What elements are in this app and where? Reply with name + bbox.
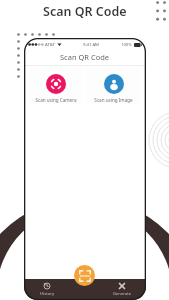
button[interactable]: Scan using Camera (30, 67, 82, 104)
staticText: Scan QR Code (43, 3, 127, 20)
button[interactable]: Scan QR code (74, 265, 95, 286)
button[interactable]: Generate (109, 282, 135, 297)
staticText: Scan QR Code (60, 52, 110, 62)
staticText: Generate (109, 291, 135, 297)
staticText: AT&T (45, 42, 55, 48)
staticText: 100% (121, 42, 132, 48)
staticText: 9:41 AM (83, 42, 99, 48)
staticText: Scan using Image (87, 97, 140, 103)
staticText: Scan using Camera (30, 97, 82, 103)
button[interactable]: History (34, 282, 60, 297)
staticText: History (34, 291, 60, 297)
button[interactable]: Scan using Image (87, 67, 140, 104)
